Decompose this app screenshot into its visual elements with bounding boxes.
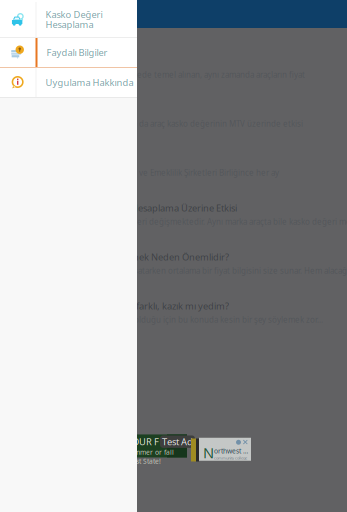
staticText: west State! <box>127 457 161 466</box>
staticText: YOUR F <box>127 435 159 448</box>
staticText: Aldığım kasko sigortası fiyatı farklı, k… <box>13 300 229 312</box>
button[interactable]: Aracımın Kasko Değerini Bilmek Neden Öne… <box>3 245 344 294</box>
staticText: Sigorta şirketleri arasında farklar oldu… <box>13 314 323 325</box>
staticText: community college <box>214 455 247 461</box>
staticText: Aracınızın sigorta fiyatını belirlemede … <box>13 69 305 80</box>
staticText: orthwest State <box>214 446 251 455</box>
staticText: Marka ve modele göre kasko değeri değişm… <box>13 216 347 227</box>
staticText: MTV kasko değerine etkili olmasa da araç… <box>13 118 303 129</box>
staticText: Aracımın Kasko Değerini Bilmek Neden Öne… <box>13 251 229 263</box>
staticText: Hesaplama <box>45 18 93 31</box>
staticText: Her yıl Türkiye Sigorta, Reasürans ve Em… <box>13 167 279 178</box>
button[interactable]: Kasko Değeri Nedir? <box>3 49 344 98</box>
staticText: Faydalı Bilgiler <box>46 46 107 59</box>
button[interactable]: Kasko Değer Listesi <box>3 147 344 196</box>
staticText: Kasko Değeri <box>45 8 102 21</box>
staticText: summer or fall <box>127 448 174 457</box>
button[interactable]: Aldığım kasko sigortası fiyatı farklı, k… <box>3 294 344 343</box>
staticText: Uygulama Hakkında <box>45 76 133 89</box>
staticText: Kasko Değeri Nedir? <box>13 55 100 67</box>
button[interactable]: Kasko Değeri <box>0 2 137 37</box>
button[interactable]: Kasko Değeri ve MTV <box>3 98 344 147</box>
staticText: N <box>203 443 214 462</box>
button[interactable]: Faydalı Bilgiler <box>0 38 137 67</box>
staticText: Test Ad <box>162 435 193 448</box>
staticText: Kasko değeri, satın alırken ya da satark… <box>13 265 347 276</box>
staticText: listesidir. <box>13 80 46 91</box>
button[interactable]: YOUR F <box>102 438 251 461</box>
button[interactable]: Araç Marka ve Modellerinin Hesaplama Üze… <box>3 196 344 245</box>
button[interactable]: Uygulama Hakkında <box>0 68 137 97</box>
staticText: Araç Marka ve Modellerinin Hesaplama Üze… <box>13 202 237 214</box>
button[interactable] <box>3 29 344 49</box>
